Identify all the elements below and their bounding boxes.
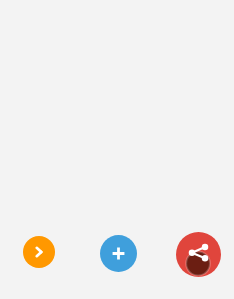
- button[interactable]: Add: [100, 235, 137, 272]
- button[interactable]: Next: [23, 236, 55, 268]
- button[interactable]: Share: [176, 232, 221, 277]
